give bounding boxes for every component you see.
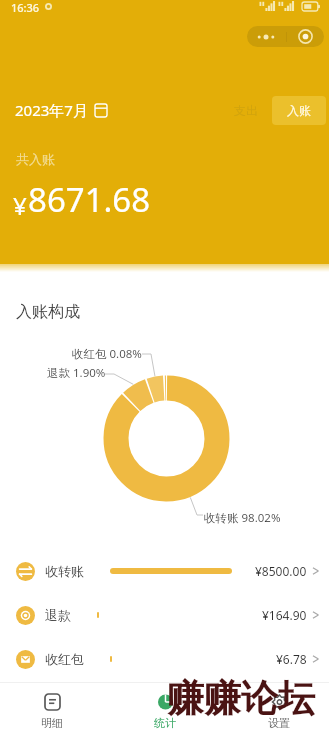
button[interactable]: Screen record: [286, 26, 324, 47]
staticText: 收转账: [45, 563, 84, 579]
staticText: ¥6.78: [276, 651, 307, 667]
staticText: 退款: [45, 607, 71, 623]
staticText: 设置: [268, 716, 290, 730]
button[interactable]: 退款: [0, 594, 329, 636]
staticText: 明细: [41, 716, 63, 730]
staticText: 退款 1.90%: [47, 365, 106, 381]
button[interactable]: 明细: [22, 688, 82, 732]
staticText: 共入账: [16, 151, 55, 167]
staticText: ¥164.90: [262, 607, 307, 623]
staticText: 入账构成: [16, 302, 80, 322]
button[interactable]: 设置: [249, 688, 309, 732]
staticText: 赚赚论坛: [167, 675, 315, 722]
staticText: 统计: [154, 716, 176, 730]
button[interactable]: 收转账: [0, 550, 329, 592]
staticText: 入账: [287, 103, 311, 118]
staticText: 8671.68: [28, 177, 151, 222]
button[interactable]: 2023年7月: [15, 100, 107, 120]
button[interactable]: 收红包: [0, 638, 329, 680]
staticText: ¥: [13, 189, 27, 222]
button[interactable]: 支出: [220, 97, 272, 124]
button[interactable]: More options: [247, 26, 285, 47]
staticText: ¥8500.00: [255, 563, 307, 579]
button[interactable]: 入账: [272, 96, 326, 125]
staticText: 收红包 0.08%: [72, 346, 142, 362]
staticText: 2023年7月: [15, 100, 88, 120]
button[interactable]: 统计: [135, 688, 195, 732]
staticText: 16:36: [11, 0, 40, 12]
staticText: 收红包: [45, 651, 84, 667]
staticText: 支出: [234, 103, 258, 118]
staticText: 收转账 98.02%: [204, 510, 281, 526]
